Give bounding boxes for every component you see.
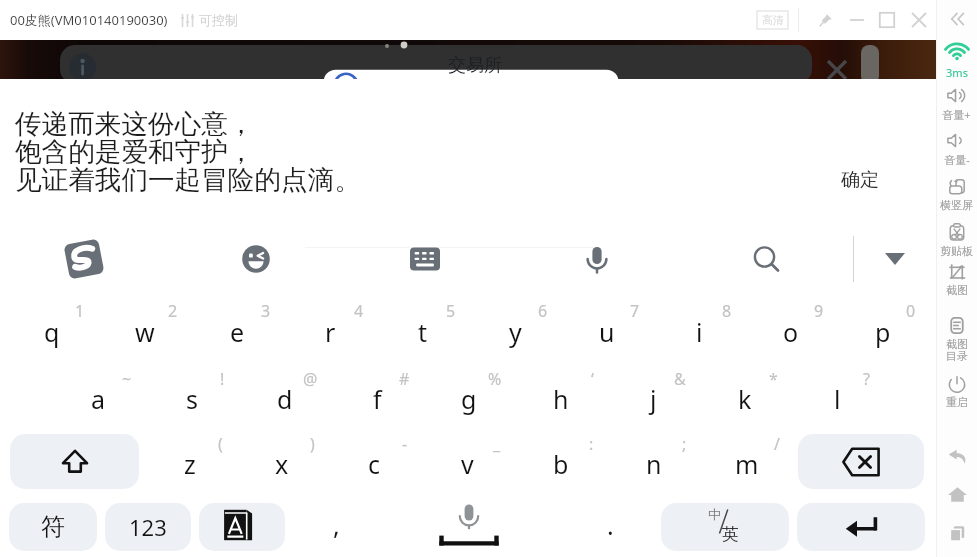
button[interactable]: # bbox=[332, 369, 422, 424]
button[interactable]: Screenshot folder bbox=[936, 313, 977, 363]
button[interactable]: @ bbox=[239, 369, 330, 424]
staticText: , bbox=[333, 508, 340, 542]
button[interactable]: Collapse panel bbox=[944, 6, 970, 32]
button[interactable]: 9 bbox=[746, 301, 836, 359]
button[interactable]: Space bbox=[383, 503, 563, 551]
button[interactable]: 123 bbox=[105, 503, 191, 551]
button[interactable]: Home bbox=[943, 480, 971, 508]
staticText: p bbox=[875, 315, 891, 349]
staticText: w bbox=[135, 315, 155, 349]
button[interactable]: 5 bbox=[378, 301, 468, 359]
button[interactable]: . bbox=[566, 503, 654, 551]
staticText: k bbox=[738, 382, 752, 416]
button[interactable]: Volume down bbox=[936, 128, 977, 167]
staticText: 横竖屏 bbox=[940, 198, 973, 212]
button[interactable]: Voice input bbox=[575, 237, 619, 281]
staticText: t bbox=[418, 315, 428, 349]
button[interactable]: 3 bbox=[192, 301, 283, 359]
button[interactable]: Back bbox=[943, 442, 971, 470]
button[interactable]: Keyboard layout bbox=[403, 237, 447, 281]
staticText: 传递而来这份心意， bbox=[15, 107, 255, 141]
button[interactable]: Maximize bbox=[873, 6, 901, 34]
staticText: d bbox=[277, 382, 293, 416]
staticText: 截图 目录 bbox=[946, 337, 968, 363]
button[interactable]: 符 bbox=[9, 503, 97, 551]
staticText: y bbox=[509, 315, 522, 349]
button[interactable]: HD quality bbox=[757, 11, 788, 29]
staticText: 7 bbox=[630, 301, 640, 322]
button[interactable]: Sogou input bbox=[62, 237, 106, 281]
button[interactable]: 0 bbox=[838, 301, 928, 359]
staticText: g bbox=[461, 382, 477, 416]
button[interactable]: Volume up bbox=[936, 83, 977, 122]
staticText: ‘ bbox=[591, 369, 594, 390]
button[interactable]: - bbox=[329, 434, 420, 489]
button[interactable]: Shift bbox=[10, 434, 139, 489]
button[interactable]: Hide keyboard bbox=[873, 237, 917, 281]
staticText: 0 bbox=[906, 301, 916, 322]
staticText: ; bbox=[682, 434, 687, 455]
staticText: 饱含的是爱和守护， bbox=[15, 135, 255, 169]
button[interactable]: 2 bbox=[99, 301, 190, 359]
button[interactable]: 7 bbox=[562, 301, 652, 359]
staticText: 确定 bbox=[841, 168, 879, 192]
staticText: l bbox=[834, 382, 841, 416]
button[interactable]: 1 bbox=[6, 301, 97, 359]
staticText: # bbox=[399, 369, 410, 390]
button[interactable]: ! bbox=[146, 369, 237, 424]
button[interactable]: Clipboard bbox=[936, 220, 977, 258]
button[interactable]: Pin bbox=[811, 6, 839, 34]
button[interactable]: Rotate screen bbox=[936, 174, 977, 212]
button[interactable]: Enter bbox=[797, 503, 925, 551]
button[interactable]: 8 bbox=[654, 301, 744, 359]
staticText: ? bbox=[863, 369, 870, 390]
button[interactable]: Chinese English toggle bbox=[661, 503, 789, 551]
button[interactable]: : bbox=[515, 434, 606, 489]
button[interactable]: Minimize bbox=[843, 6, 871, 34]
button[interactable]: Emoji bbox=[234, 237, 278, 281]
button[interactable]: Backspace bbox=[798, 434, 924, 489]
button[interactable]: * bbox=[700, 369, 790, 424]
button[interactable]: 6 bbox=[470, 301, 560, 359]
button[interactable]: % bbox=[424, 369, 514, 424]
staticText: j bbox=[650, 382, 657, 416]
button[interactable]: ~ bbox=[53, 369, 144, 424]
staticText: * bbox=[769, 369, 778, 390]
staticText: 3 bbox=[261, 301, 271, 322]
staticText: n bbox=[646, 447, 662, 481]
button[interactable]: ( bbox=[145, 434, 235, 489]
button[interactable]: Language bbox=[199, 503, 285, 551]
staticText: % bbox=[488, 369, 502, 390]
staticText: 英 bbox=[722, 524, 739, 545]
button[interactable]: Network latency bbox=[936, 41, 977, 80]
staticText: e bbox=[230, 315, 245, 349]
button[interactable]: ? bbox=[792, 369, 882, 424]
staticText: _ bbox=[493, 434, 501, 455]
button[interactable]: Restart bbox=[936, 371, 977, 409]
button[interactable]: Search bbox=[744, 237, 788, 281]
staticText: 6 bbox=[538, 301, 548, 322]
button[interactable]: Close bbox=[905, 6, 933, 34]
button[interactable]: ; bbox=[608, 434, 699, 489]
staticText: h bbox=[553, 382, 569, 416]
button[interactable]: & bbox=[608, 369, 698, 424]
button[interactable]: 4 bbox=[285, 301, 376, 359]
staticText: 中 bbox=[708, 506, 721, 522]
staticText: f bbox=[373, 382, 382, 416]
staticText: 音量- bbox=[944, 152, 970, 167]
button[interactable]: ‘ bbox=[516, 369, 606, 424]
button[interactable]: , bbox=[292, 503, 380, 551]
staticText: ( bbox=[218, 434, 223, 455]
staticText: z bbox=[184, 447, 196, 481]
staticText: 高清 bbox=[762, 13, 784, 27]
staticText: 可控制 bbox=[199, 12, 238, 28]
button[interactable]: ) bbox=[237, 434, 327, 489]
button[interactable]: 确定 bbox=[828, 163, 892, 197]
staticText: s bbox=[186, 382, 198, 416]
button[interactable]: Recent apps bbox=[943, 519, 971, 547]
button[interactable]: Screenshot bbox=[936, 259, 977, 297]
button[interactable]: _ bbox=[422, 434, 513, 489]
button[interactable]: / bbox=[701, 434, 792, 489]
staticText: a bbox=[91, 382, 106, 416]
staticText: 音量+ bbox=[942, 107, 971, 122]
